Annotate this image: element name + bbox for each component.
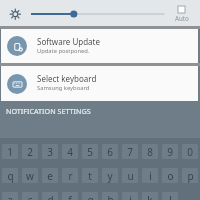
staticText: NOTIFICATION SETTINGS [6,106,91,116]
button[interactable]: 3 [42,144,58,159]
button[interactable]: s [22,192,38,200]
button[interactable]: 8 [142,144,158,159]
staticText: 8 [147,145,153,159]
staticText: 9 [167,145,173,159]
staticText: r [68,169,73,183]
staticText: 0 [187,145,193,159]
button[interactable]: q [2,168,18,183]
staticText: Samsung keyboard [37,84,90,92]
button[interactable]: i [142,168,158,183]
button[interactable]: 7 [122,144,138,159]
button[interactable]: y [102,168,118,183]
staticText: h [107,193,114,200]
button[interactable]: 4 [62,144,78,159]
button[interactable]: NOTIFICATION SETTINGS [0,101,200,118]
button[interactable]: 5 [82,144,98,159]
staticText: Select keyboard [37,73,97,84]
staticText: 2 [27,145,33,159]
staticText: e [47,169,53,183]
button[interactable]: f [62,192,78,200]
button[interactable]: a [2,192,18,200]
button[interactable]: g [82,192,98,200]
staticText: i [149,169,152,183]
staticText: o [167,169,174,183]
button[interactable]: l [162,192,178,200]
button[interactable]: e [42,168,58,183]
staticText: g [87,193,94,200]
button[interactable]: o [162,168,178,183]
staticText: j [129,193,132,200]
staticText: Software Update [37,36,100,47]
button[interactable]: d [42,192,58,200]
button[interactable]: p [182,168,198,183]
staticText: 7 [127,145,133,159]
staticText: y [107,169,113,183]
staticText: Update postponed. [37,47,90,55]
staticText: u [127,169,134,183]
staticText: 4 [67,145,73,159]
button[interactable]: 0 [182,144,198,159]
staticText: 6 [107,145,113,159]
button[interactable]: 1 [2,144,18,159]
staticText: l [169,193,172,200]
button[interactable]: u [122,168,138,183]
button[interactable]: r [62,168,78,183]
button[interactable]: Auto brightness [170,6,193,25]
button[interactable]: w [22,168,38,183]
staticText: k [147,193,153,200]
button[interactable]: Software Update [1,29,198,63]
staticText: d [47,193,54,200]
button[interactable]: 6 [102,144,118,159]
staticText: 3 [47,145,53,159]
staticText: p [187,169,194,183]
staticText: a [7,193,13,200]
staticText: f [68,193,72,200]
staticText: w [26,169,34,183]
button[interactable]: 9 [162,144,178,159]
staticText: 1 [7,145,13,159]
button[interactable]: 2 [22,144,38,159]
button[interactable]: h [102,192,118,200]
staticText: t [88,169,92,183]
button[interactable]: j [122,192,138,200]
button[interactable]: k [142,192,158,200]
staticText: q [7,169,14,183]
staticText: Auto [175,14,189,22]
button[interactable]: Select keyboard [1,66,198,101]
button[interactable]: t [82,168,98,183]
staticText: 5 [87,145,93,159]
staticText: s [28,193,33,200]
